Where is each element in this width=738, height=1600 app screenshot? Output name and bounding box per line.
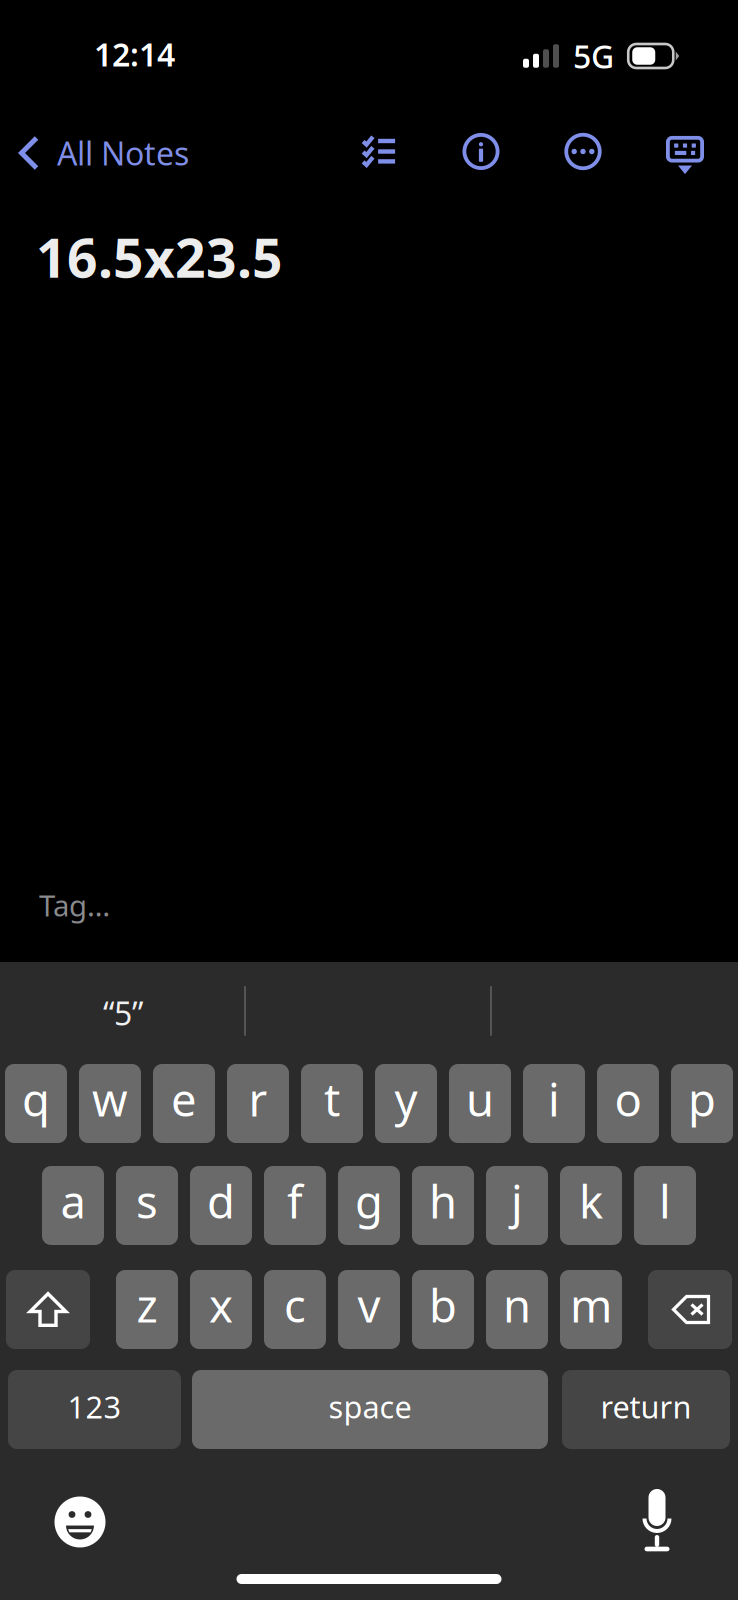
button[interactable]: Shift [6,1270,90,1349]
staticText: x [209,1275,233,1335]
staticText: b [429,1275,457,1335]
button[interactable]: 123 [8,1370,181,1449]
button[interactable]: k [560,1166,622,1245]
button[interactable]: l [634,1166,696,1245]
staticText: o [614,1069,641,1129]
staticText: j [511,1171,523,1231]
button[interactable]: m [560,1270,622,1349]
staticText: n [503,1275,531,1335]
staticText: m [570,1275,612,1335]
button[interactable]: d [190,1166,252,1245]
staticText: f [287,1171,303,1231]
button[interactable]: o [597,1064,659,1143]
staticText: i [548,1069,560,1129]
button[interactable]: More [556,125,610,178]
staticText: k [579,1171,603,1231]
staticText: v [357,1275,380,1335]
button[interactable]: q [5,1064,67,1143]
staticText: d [207,1171,235,1231]
button[interactable]: g [338,1166,400,1245]
staticText: 16.5x23.5 [36,222,283,292]
staticText: q [22,1069,50,1129]
staticText: “5” [103,992,143,1034]
staticText: z [136,1275,157,1335]
button[interactable]: All Notes [0,123,300,183]
button[interactable]: x [190,1270,252,1349]
staticText: Tag… [39,885,110,924]
button[interactable]: c [264,1270,326,1349]
button[interactable]: p [671,1064,733,1143]
staticText: h [429,1171,457,1231]
button[interactable]: h [412,1166,474,1245]
staticText: e [171,1069,197,1129]
button[interactable]: a [42,1166,104,1245]
staticText: g [355,1171,383,1231]
button[interactable]: Checklist [349,124,408,179]
button[interactable]: r [227,1064,289,1143]
staticText: return [600,1386,691,1427]
staticText: 5G [573,35,614,77]
button[interactable]: Hide Keyboard [656,136,714,174]
button[interactable]: return [562,1370,730,1449]
button[interactable]: n [486,1270,548,1349]
button[interactable]: Dictate [630,1479,684,1559]
button[interactable]: v [338,1270,400,1349]
staticText: l [659,1171,671,1231]
staticText: a [60,1171,85,1231]
button[interactable]: w [79,1064,141,1143]
button[interactable]: Note Info [454,125,508,178]
staticText: s [136,1171,158,1231]
staticText: r [248,1069,267,1129]
staticText: c [284,1275,306,1335]
staticText: y [394,1069,417,1129]
button[interactable]: b [412,1270,474,1349]
button[interactable]: t [301,1064,363,1143]
button[interactable]: f [264,1166,326,1245]
staticText: u [466,1069,494,1129]
button[interactable]: s [116,1166,178,1245]
button[interactable]: e [153,1064,215,1143]
button[interactable]: Tag… [39,881,738,929]
staticText: w [92,1069,128,1129]
staticText: space [328,1386,411,1427]
button[interactable]: Emoji [44,1486,115,1557]
button[interactable]: z [116,1270,178,1349]
button[interactable]: Delete [648,1270,732,1349]
button[interactable]: u [449,1064,511,1143]
button[interactable]: j [486,1166,548,1245]
button[interactable]: i [523,1064,585,1143]
staticText: t [324,1069,340,1129]
button[interactable]: “5” [1,975,245,1051]
staticText: All Notes [57,132,189,174]
staticText: p [688,1069,716,1129]
staticText: 12:14 [94,33,175,75]
button[interactable]: space [192,1370,548,1449]
button[interactable]: y [375,1064,437,1143]
staticText: 123 [67,1386,121,1427]
